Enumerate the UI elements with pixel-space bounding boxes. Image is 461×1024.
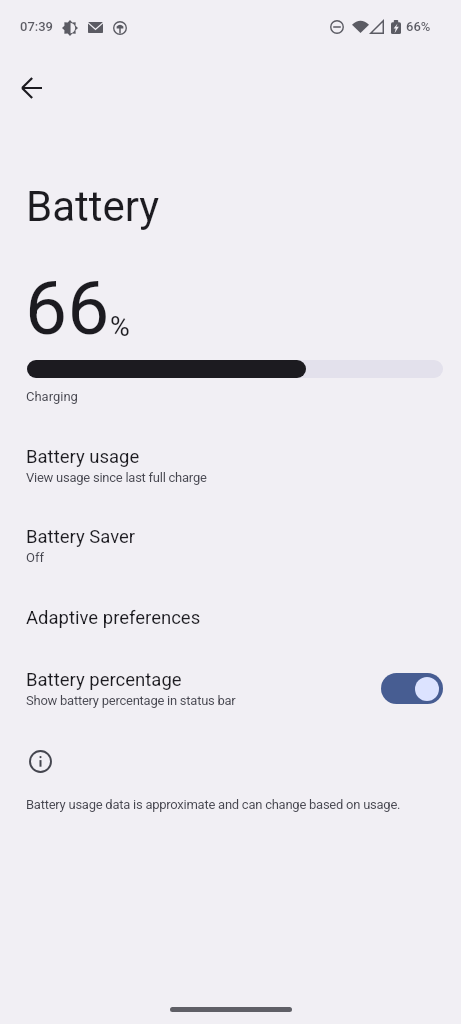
staticText: 66 <box>25 264 110 352</box>
staticText: 66% <box>406 19 431 34</box>
staticText: Battery usage <box>26 446 140 468</box>
staticText: Battery percentage <box>26 669 182 691</box>
button[interactable]: Battery percentage <box>0 669 461 708</box>
staticText: Show battery percentage in status bar <box>26 693 236 708</box>
staticText: Charging <box>26 389 78 404</box>
staticText: Off <box>26 550 44 565</box>
staticText: View usage since last full charge <box>26 470 207 485</box>
staticText: Adaptive preferences <box>26 607 201 629</box>
button[interactable]: Back <box>7 64 55 112</box>
button[interactable]: Battery usage <box>0 443 461 491</box>
staticText: Battery usage data is approximate and ca… <box>26 797 401 812</box>
button[interactable]: Battery Saver <box>0 523 461 571</box>
button[interactable]: Battery percentage toggle <box>381 673 443 704</box>
staticText: Battery Saver <box>26 526 136 548</box>
staticText: % <box>110 311 130 343</box>
staticText: Battery <box>26 182 160 231</box>
staticText: 07:39 <box>20 19 53 34</box>
